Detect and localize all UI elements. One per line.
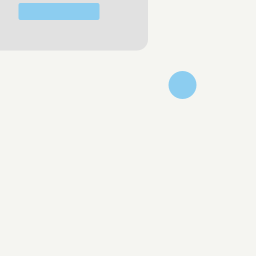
button[interactable]: Action bbox=[167, 71, 197, 99]
button[interactable]: Title bbox=[18, 3, 99, 20]
